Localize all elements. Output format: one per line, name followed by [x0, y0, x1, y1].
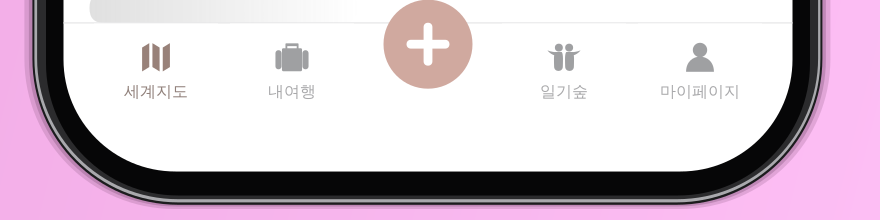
staticText: 세계지도 — [124, 81, 188, 101]
button[interactable]: 마이페이지 — [638, 23, 762, 97]
button[interactable]: Add — [383, 0, 472, 89]
staticText: 일기숲 — [540, 81, 588, 101]
button[interactable]: 세계지도 — [94, 23, 218, 97]
button[interactable]: 내여행 — [230, 23, 354, 97]
staticText: 마이페이지 — [660, 81, 740, 101]
staticText: 내여행 — [268, 81, 316, 101]
button[interactable]: 일기숲 — [502, 23, 626, 97]
